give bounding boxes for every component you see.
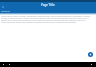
button[interactable]: Edit	[88, 52, 93, 57]
button[interactable]: Navigate up	[1, 5, 5, 9]
staticText: Lorem ipsum dolor sit amet, consectetur …	[1, 15, 91, 23]
staticText: Page Title	[41, 3, 55, 7]
staticText: example	[1, 10, 10, 13]
